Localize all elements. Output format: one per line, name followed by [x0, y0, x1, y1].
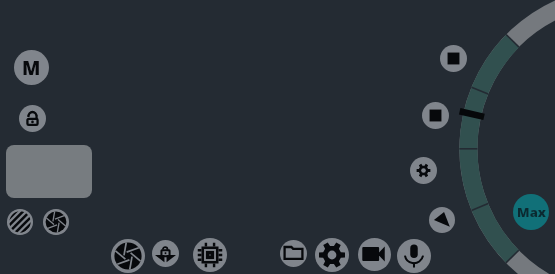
button[interactable]: Stop [440, 45, 467, 72]
button[interactable] [6, 145, 92, 198]
staticText: Max [517, 203, 546, 221]
button[interactable]: Unlock [19, 105, 46, 132]
button[interactable]: Send [429, 207, 455, 233]
button[interactable]: Mode M [14, 50, 49, 85]
button[interactable]: Video [358, 238, 391, 271]
button[interactable]: Settings [315, 238, 349, 272]
button[interactable]: Gallery [280, 240, 307, 267]
button[interactable]: Filter [7, 209, 33, 235]
staticText: M [22, 55, 41, 81]
button[interactable]: AE lock [152, 240, 179, 267]
button[interactable]: Options [410, 157, 437, 184]
button[interactable]: Processing [193, 238, 227, 272]
button[interactable]: Aperture [43, 209, 69, 235]
button[interactable]: Microphone [397, 239, 431, 273]
button[interactable]: Shutter [111, 239, 145, 273]
button[interactable]: Max [513, 194, 549, 230]
button[interactable]: Stop recording [422, 102, 449, 129]
